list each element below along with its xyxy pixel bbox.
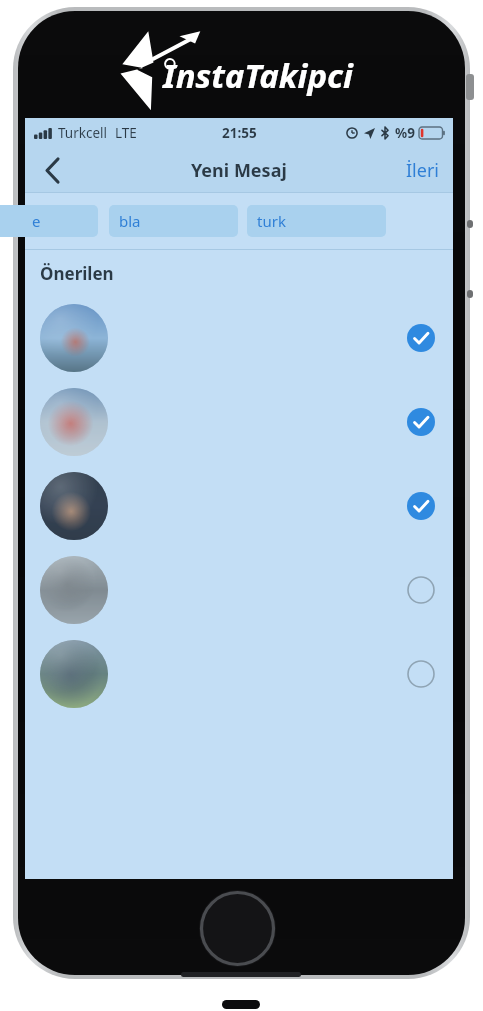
button[interactable]: İleri: [406, 148, 439, 192]
button[interactable]: Selected: [407, 324, 435, 352]
staticText: Önerilen: [40, 262, 114, 285]
button[interactable]: Selected: [407, 408, 435, 436]
staticText: İleri: [406, 158, 439, 183]
staticText: e: [32, 211, 41, 231]
button[interactable]: bla: [109, 205, 238, 237]
staticText: bla: [119, 211, 141, 231]
button[interactable]: Home: [199, 890, 276, 967]
staticText: LTE: [115, 124, 137, 142]
staticText: Yeni Mesaj: [191, 158, 287, 183]
staticText: %9: [395, 124, 415, 142]
button[interactable]: Selected: [25, 464, 453, 548]
button[interactable]: Selected: [25, 296, 453, 380]
staticText: turk: [257, 211, 286, 231]
staticText: 21:55: [222, 124, 257, 142]
button[interactable]: turk: [247, 205, 386, 237]
button[interactable]: Back: [25, 148, 79, 192]
staticText: Turkcell: [58, 124, 108, 142]
button[interactable]: Not selected: [25, 632, 453, 716]
button[interactable]: Not selected: [407, 576, 435, 604]
staticText: InstaTakipci: [163, 53, 353, 98]
button[interactable]: Selected: [25, 380, 453, 464]
button[interactable]: Not selected: [407, 660, 435, 688]
button[interactable]: e: [0, 205, 98, 237]
button[interactable]: Selected: [407, 492, 435, 520]
button[interactable]: Not selected: [25, 548, 453, 632]
